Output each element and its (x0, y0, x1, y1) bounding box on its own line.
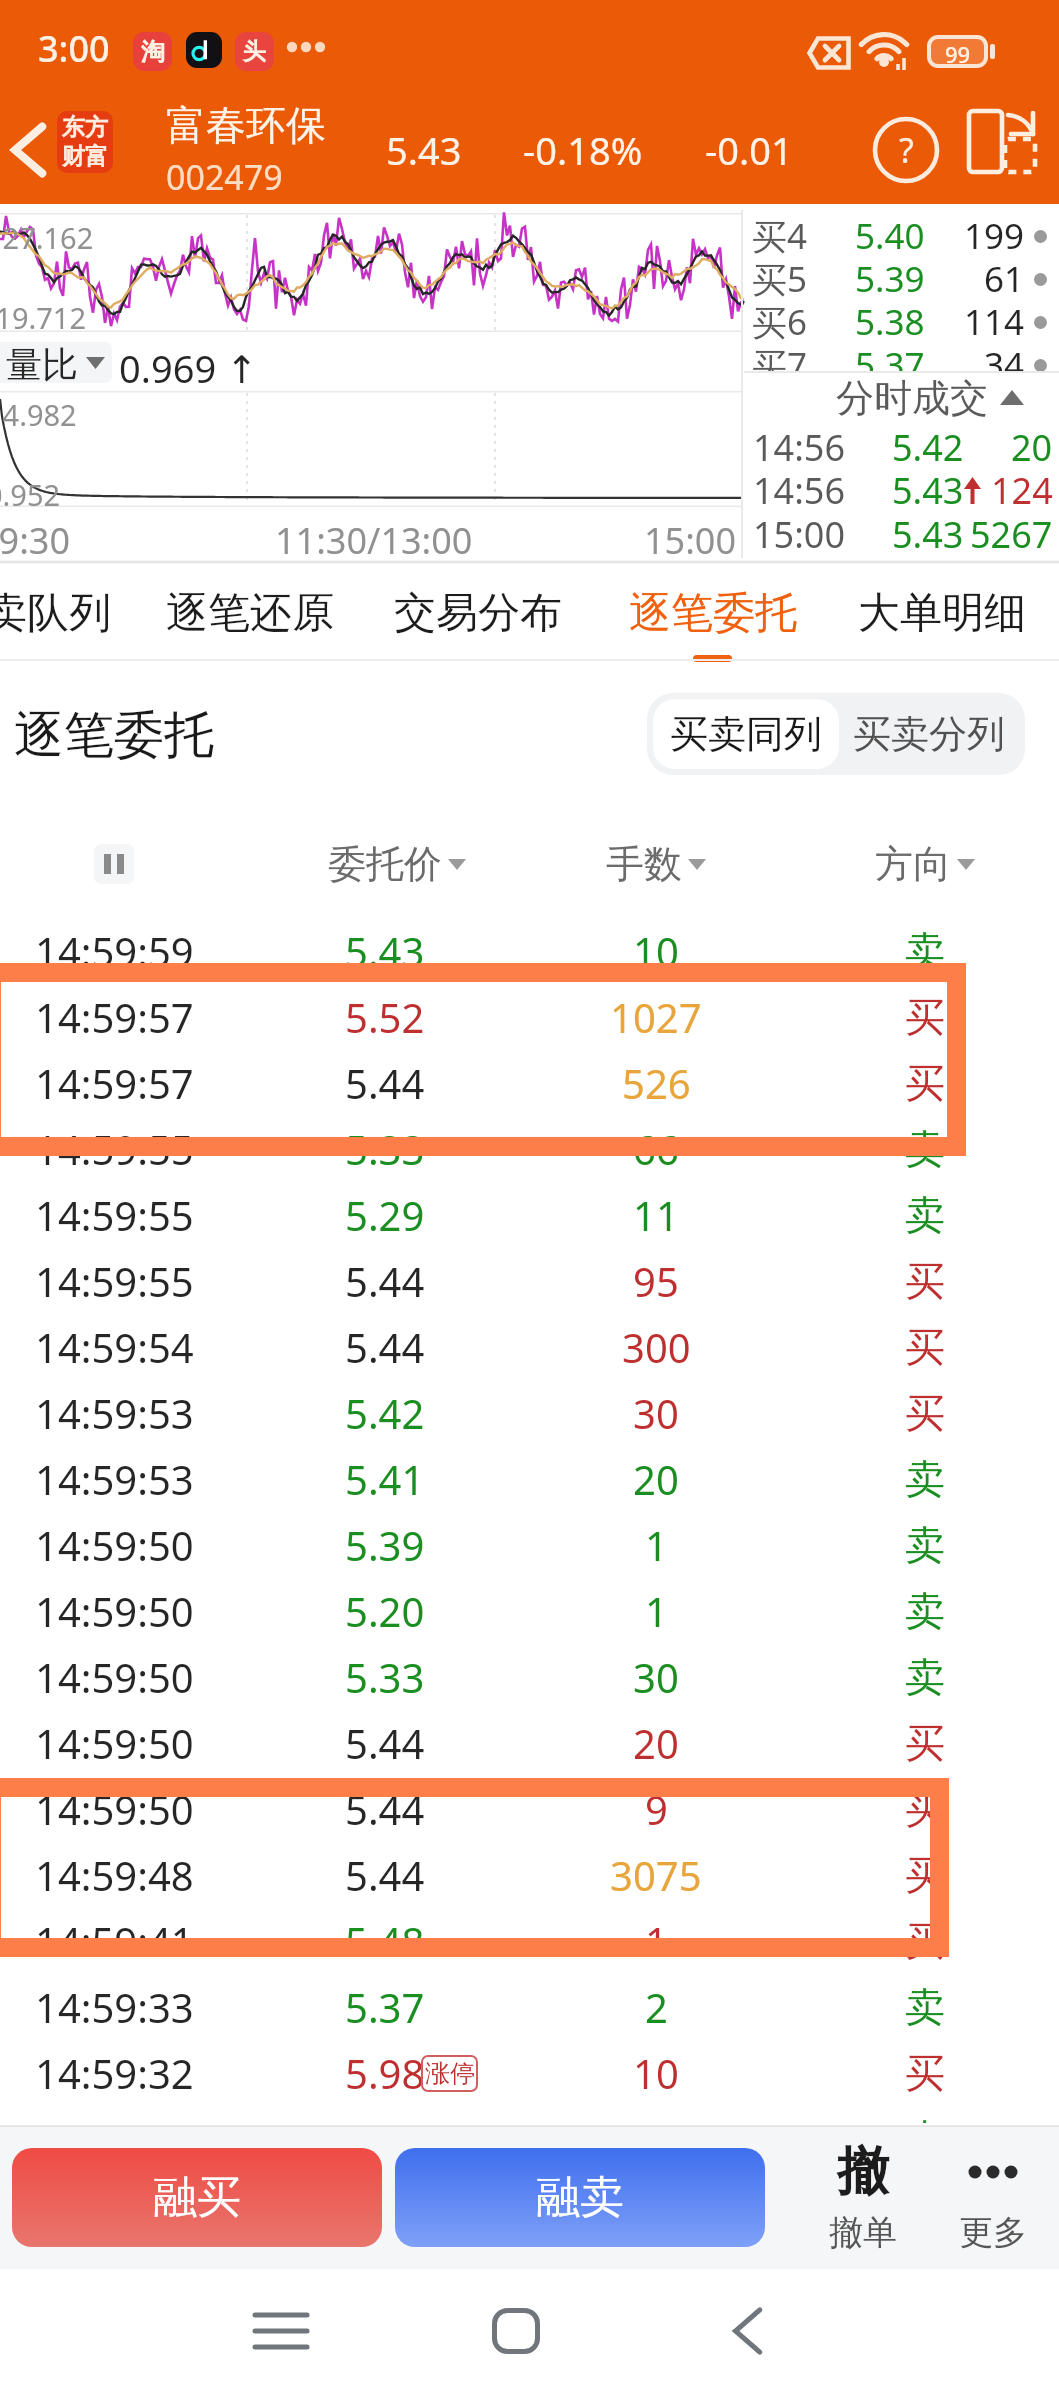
button[interactable]: 买卖同列 (653, 699, 839, 769)
staticText: 买 (905, 1784, 945, 1834)
staticText: 20 (633, 1452, 679, 1506)
staticText: 买 (905, 2048, 945, 2098)
button[interactable]: 14:59:54 (0, 1314, 1059, 1380)
button[interactable]: Home (456, 2271, 576, 2391)
button[interactable]: Recent apps (221, 2271, 341, 2391)
staticText: 委托价 (328, 840, 442, 888)
button[interactable]: 14:59:50 (0, 1578, 1059, 1644)
staticText: 14:59:55 (35, 1188, 194, 1242)
staticText: 卖 (905, 1520, 945, 1570)
staticText: 5.43 (345, 924, 425, 978)
button[interactable]: 14:59:50 (0, 1776, 1059, 1842)
staticText: 14:59:53 (35, 1386, 194, 1440)
staticText: 10 (633, 2046, 679, 2100)
staticText: 2 (645, 1980, 668, 2034)
staticText: 卖 (905, 1652, 945, 1702)
button[interactable]: Back (687, 2271, 807, 2391)
button[interactable]: 14:59:59 (0, 918, 1059, 984)
staticText: 撤 (837, 2139, 889, 2205)
staticText: 14:59:53 (35, 1452, 194, 1506)
button[interactable]: Pause (86, 838, 142, 890)
staticText: 002479 (166, 154, 283, 200)
staticText: 融买 (153, 2170, 241, 2225)
button[interactable]: 14:59:50 (0, 1512, 1059, 1578)
button[interactable]: 量比 (0, 342, 112, 383)
staticText: 1 (645, 1914, 668, 1968)
button[interactable]: 14:59:33 (0, 1974, 1059, 2040)
button[interactable]: Help (860, 96, 952, 204)
button[interactable]: Rotate screen (957, 100, 1047, 182)
staticText: ? (899, 127, 914, 173)
button[interactable]: 14:59:30 (0, 2106, 1059, 2123)
button[interactable]: 逐笔还原 (145, 564, 355, 662)
staticText: 0.952 (0, 475, 61, 514)
button[interactable]: 14:59:53 (0, 1446, 1059, 1512)
staticText: 14:56 (753, 423, 846, 472)
staticText: 5.43 (892, 510, 964, 559)
staticText: 逐笔委托 (629, 587, 797, 640)
staticText: 卖 (905, 1124, 945, 1174)
staticText: 买 (905, 992, 945, 1042)
button[interactable]: 14:59:48 (0, 1842, 1059, 1908)
button[interactable]: 更多 (927, 2126, 1059, 2269)
button[interactable]: 14:59:57 (0, 1050, 1059, 1116)
button[interactable]: 分时成交 (836, 374, 1024, 420)
staticText: 3075 (610, 1848, 702, 1902)
button[interactable]: 逐笔委托 (608, 564, 818, 662)
button[interactable]: 14:59:55 (0, 1182, 1059, 1248)
staticText: 5.44 (345, 1782, 425, 1836)
staticText: 0.969 ↑ (119, 342, 258, 383)
staticText: 3:00 (38, 24, 110, 73)
staticText: 手数 (606, 840, 682, 888)
staticText: 14:59:55 (35, 1254, 194, 1308)
button[interactable]: 14:59:50 (0, 1644, 1059, 1710)
button[interactable]: 委托价 (297, 834, 497, 894)
button[interactable]: 大单明细 (837, 564, 1047, 662)
staticText: 14:59:50 (35, 1518, 194, 1572)
button[interactable]: 14:59:57 (0, 984, 1059, 1050)
staticText: 5.43 (386, 124, 462, 176)
button[interactable]: 14:59:50 (0, 1710, 1059, 1776)
staticText: 5.20 (345, 1584, 425, 1638)
staticText: 卖 (905, 1454, 945, 1504)
button[interactable]: Back (0, 96, 56, 204)
button[interactable]: 14:59:55 (0, 1116, 1059, 1182)
button[interactable]: 方向 (825, 834, 1025, 894)
staticText: 5267 (970, 510, 1053, 559)
staticText: 买卖分列 (853, 710, 1005, 758)
staticText: 分时成交 (836, 374, 988, 420)
staticText: 涨停 (425, 2058, 475, 2089)
staticText: 300 (622, 1320, 691, 1374)
button[interactable]: 买卖分列 (839, 699, 1019, 769)
staticText: 11:30/13:00 (275, 516, 473, 556)
staticText: 买6 (752, 298, 808, 346)
staticText: 1 (645, 1584, 668, 1638)
staticText: 买7 (752, 341, 808, 372)
staticText: 14:59:32 (35, 2046, 194, 2100)
staticText: 撤单 (829, 2211, 897, 2254)
button[interactable]: 手数 (556, 834, 756, 894)
button[interactable]: 14:59:32 (0, 2040, 1059, 2106)
button[interactable]: 14:59:55 (0, 1248, 1059, 1314)
button[interactable]: 卖队列 (0, 564, 153, 662)
button[interactable]: 融买 (12, 2148, 382, 2247)
staticText: 20 (1011, 423, 1053, 472)
staticText: 5.44 (345, 1848, 425, 1902)
staticText: 14:59:48 (35, 1848, 194, 1902)
staticText: 买4 (752, 212, 808, 260)
staticText: 5.41 (345, 1452, 425, 1506)
button[interactable]: 融卖 (395, 2148, 765, 2247)
staticText: 5.44 (345, 1320, 425, 1374)
button[interactable]: 撤 (793, 2126, 933, 2269)
button[interactable]: 14:59:41 (0, 1908, 1059, 1974)
staticText: 14:59:50 (35, 1584, 194, 1638)
staticText: 5.43 (892, 466, 964, 515)
staticText: 09:30 (0, 516, 71, 556)
staticText: 5.40 (855, 212, 925, 260)
staticText: 127.162 (0, 218, 94, 257)
button[interactable]: 14:59:53 (0, 1380, 1059, 1446)
staticText: 更多 (959, 2211, 1027, 2254)
staticText: 5.52 (345, 990, 425, 1044)
button[interactable]: 交易分布 (373, 564, 583, 662)
